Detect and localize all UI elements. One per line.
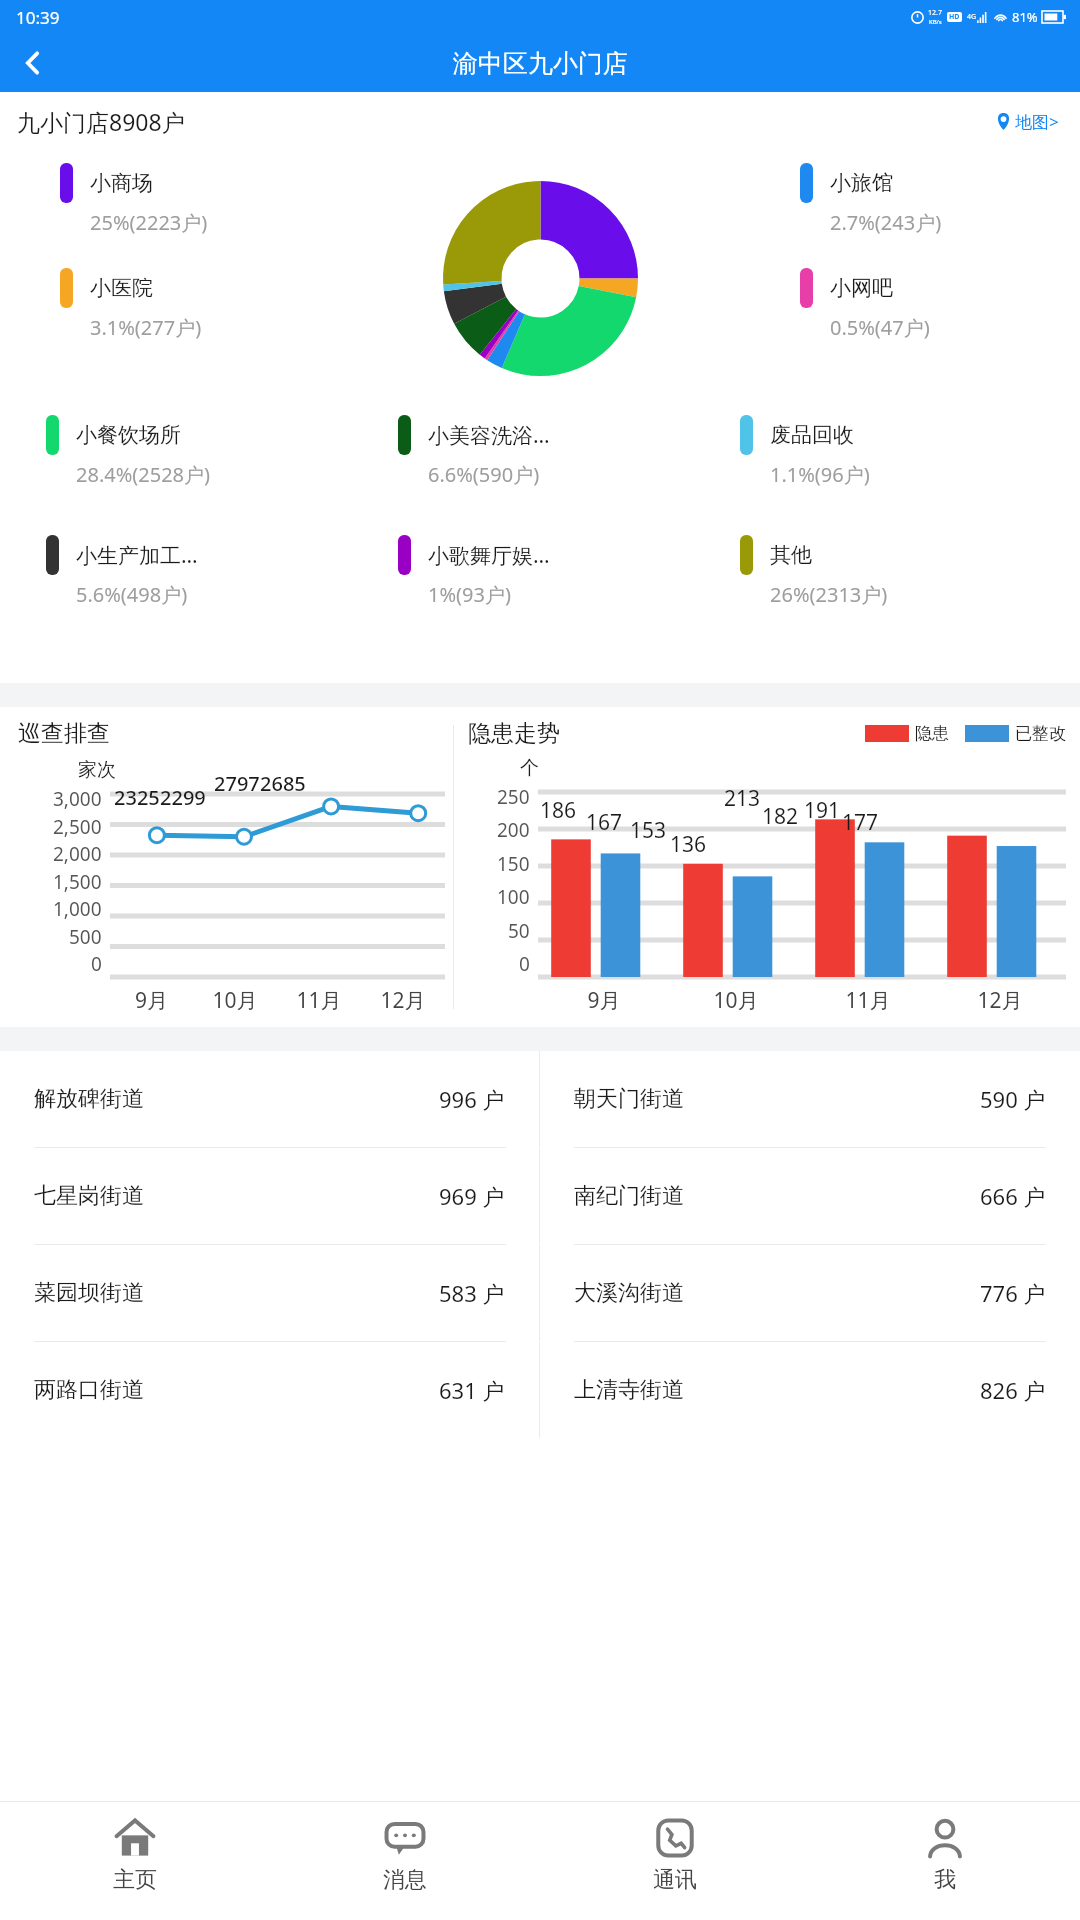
staticText: 0	[519, 951, 530, 977]
staticText: 26%(2313户)	[770, 581, 888, 608]
staticText: 9月	[538, 986, 670, 1015]
staticText: 666 户	[980, 1181, 1046, 1211]
staticText: 10月	[193, 986, 277, 1015]
button[interactable]: 小美容洗浴…	[398, 413, 740, 490]
staticText: 七星岗街道	[34, 1182, 144, 1210]
staticText: 2,000	[53, 841, 102, 867]
staticText: 0	[91, 951, 102, 977]
staticText: 182	[762, 802, 799, 831]
staticText: 12.7	[928, 8, 942, 18]
staticText: 167	[586, 808, 623, 837]
staticText: 100	[497, 884, 530, 910]
staticText: 通讯	[653, 1866, 697, 1894]
staticText: 136	[670, 830, 707, 859]
staticText: 5.6%(498户)	[76, 581, 188, 608]
button[interactable]: 小医院	[60, 266, 350, 343]
button[interactable]: 小餐饮场所	[46, 413, 398, 490]
staticText: 2685	[260, 770, 306, 797]
button[interactable]: 通讯	[540, 1802, 810, 1920]
staticText: 3.1%(277户)	[90, 314, 202, 341]
staticText: KB/s	[929, 18, 942, 26]
staticText: 大溪沟街道	[574, 1279, 684, 1307]
staticText: 1.1%(96户)	[770, 461, 870, 488]
staticText: 1%(93户)	[428, 581, 511, 608]
staticText: 家次	[78, 758, 116, 782]
staticText: 153	[630, 816, 667, 845]
staticText: 12月	[361, 986, 445, 1015]
staticText: 250	[497, 784, 530, 810]
staticText: 4G	[967, 12, 977, 22]
button[interactable]: 朝天门街道	[540, 1051, 1080, 1147]
staticText: 消息	[383, 1866, 427, 1894]
button[interactable]: 我	[810, 1802, 1080, 1920]
staticText: 菜园坝街道	[34, 1279, 144, 1307]
button[interactable]: 其他	[740, 533, 1066, 610]
staticText: 12月	[934, 986, 1066, 1015]
staticText: 500	[69, 924, 102, 950]
staticText: 3,000	[53, 786, 102, 812]
button[interactable]: 地图>	[991, 106, 1063, 137]
button[interactable]: 两路口街道	[0, 1342, 539, 1438]
button[interactable]: 废品回收	[740, 413, 1066, 490]
staticText: 1,500	[53, 869, 102, 895]
staticText: 1,000	[53, 896, 102, 922]
staticText: 个	[520, 756, 539, 780]
staticText: 200	[497, 817, 530, 843]
staticText: 10:39	[16, 6, 60, 29]
staticText: 81%	[1012, 8, 1038, 26]
button[interactable]: 大溪沟街道	[540, 1245, 1080, 1341]
staticText: 776 户	[980, 1278, 1046, 1308]
staticText: 583 户	[439, 1278, 505, 1308]
staticText: 废品回收	[770, 422, 854, 448]
button[interactable]: 小商场	[60, 161, 350, 238]
staticText: 2797	[214, 770, 260, 797]
button[interactable]: 南纪门街道	[540, 1148, 1080, 1244]
staticText: 已整改	[1015, 723, 1066, 744]
staticText: 两路口街道	[34, 1376, 144, 1404]
staticText: 2,500	[53, 814, 102, 840]
staticText: 上清寺街道	[574, 1376, 684, 1404]
button[interactable]: 菜园坝街道	[0, 1245, 539, 1341]
button[interactable]: 小歌舞厅娱…	[398, 533, 740, 610]
button[interactable]: 解放碑街道	[0, 1051, 539, 1147]
staticText: HD	[949, 12, 960, 22]
button[interactable]: 消息	[270, 1802, 540, 1920]
staticText: 我	[934, 1866, 956, 1894]
staticText: 177	[842, 808, 879, 837]
staticText: 150	[497, 851, 530, 877]
staticText: 隐患走势	[468, 719, 560, 748]
staticText: 2299	[160, 784, 206, 811]
button[interactable]: 小生产加工…	[46, 533, 398, 610]
staticText: 969 户	[439, 1181, 505, 1211]
button[interactable]: 七星岗街道	[0, 1148, 539, 1244]
button[interactable]: 主页	[0, 1802, 270, 1920]
staticText: 九小门店8908户	[17, 106, 185, 137]
staticText: 631 户	[439, 1375, 505, 1405]
staticText: 28.4%(2528户)	[76, 461, 211, 488]
staticText: 590 户	[980, 1084, 1046, 1114]
staticText: 小歌舞厅娱…	[428, 541, 550, 570]
staticText: 小网吧	[830, 275, 893, 301]
staticText: 191	[804, 796, 841, 825]
staticText: 9月	[110, 986, 193, 1015]
staticText: 小旅馆	[830, 170, 893, 196]
staticText: 0.5%(47户)	[830, 314, 930, 341]
staticText: 南纪门街道	[574, 1182, 684, 1210]
staticText: 213	[724, 784, 761, 813]
button[interactable]: 小网吧	[800, 266, 1050, 343]
staticText: 826 户	[980, 1375, 1046, 1405]
staticText: 隐患	[915, 723, 949, 744]
staticText: 2325	[114, 784, 160, 811]
staticText: 小美容洗浴…	[428, 421, 550, 450]
button[interactable]: 小旅馆	[800, 161, 1050, 238]
staticText: 6.6%(590户)	[428, 461, 540, 488]
staticText: 主页	[113, 1866, 157, 1894]
staticText: 10月	[670, 986, 802, 1015]
staticText: 11月	[802, 986, 934, 1015]
button[interactable]: Back	[0, 34, 66, 92]
button[interactable]: 上清寺街道	[540, 1342, 1080, 1438]
staticText: 地图>	[1015, 110, 1059, 133]
staticText: 巡查排查	[18, 719, 110, 748]
staticText: 其他	[770, 542, 812, 568]
staticText: 朝天门街道	[574, 1085, 684, 1113]
